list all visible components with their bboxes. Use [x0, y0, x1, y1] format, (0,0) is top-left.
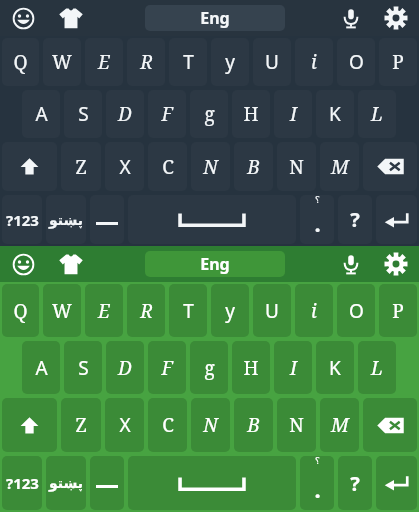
staticText: O — [349, 298, 364, 324]
button[interactable]: C — [148, 398, 187, 452]
button[interactable]: R — [127, 284, 165, 337]
button[interactable]: U — [253, 284, 291, 337]
button[interactable]: Shift — [2, 142, 57, 191]
button[interactable]: Emoji — [0, 246, 47, 282]
button[interactable]: Eng — [145, 5, 285, 31]
staticText: W — [52, 49, 72, 75]
button[interactable]: Backspace — [363, 142, 417, 191]
button[interactable]: g — [190, 90, 228, 138]
staticText: Q — [13, 298, 28, 324]
button[interactable]: O — [337, 38, 375, 86]
staticText: B — [247, 412, 260, 438]
button[interactable]: B — [234, 398, 273, 452]
button[interactable]: P — [379, 38, 417, 86]
button[interactable]: i — [295, 38, 333, 86]
button[interactable]: Underscore — [90, 195, 124, 244]
button[interactable]: ? — [338, 456, 372, 510]
button[interactable]: K — [316, 90, 354, 138]
staticText: Q — [13, 49, 28, 75]
button[interactable]: A — [22, 341, 60, 394]
button[interactable]: X — [105, 398, 144, 452]
button[interactable]: Space — [128, 456, 296, 510]
staticText: Eng — [200, 253, 230, 275]
staticText: ? — [350, 470, 360, 497]
staticText: X — [119, 412, 131, 438]
button[interactable]: A — [22, 90, 60, 138]
button[interactable]: T — [169, 38, 207, 86]
button[interactable]: L — [358, 341, 396, 394]
button[interactable]: W — [43, 38, 81, 86]
button[interactable]: M — [320, 142, 359, 191]
button[interactable]: ?123 — [2, 195, 42, 244]
button[interactable]: N — [191, 398, 230, 452]
staticText: Eng — [200, 7, 230, 29]
button[interactable]: Enter — [376, 456, 417, 510]
staticText: پښتو — [49, 475, 83, 491]
button[interactable]: Space — [128, 195, 296, 244]
button[interactable]: T — [169, 284, 207, 337]
button[interactable]: Shift — [2, 398, 57, 452]
button[interactable]: Themes — [47, 0, 95, 36]
button[interactable]: L — [358, 90, 396, 138]
button[interactable]: D — [106, 90, 144, 138]
button[interactable]: E — [85, 284, 123, 337]
button[interactable]: F — [148, 341, 186, 394]
button[interactable]: X — [105, 142, 144, 191]
button[interactable]: پښتو — [46, 195, 86, 244]
staticText: L — [371, 101, 383, 127]
button[interactable]: R — [127, 38, 165, 86]
button[interactable]: N — [277, 142, 316, 191]
button[interactable]: I — [274, 90, 312, 138]
button[interactable]: O — [337, 284, 375, 337]
button[interactable]: H — [232, 341, 270, 394]
staticText: X — [119, 154, 131, 180]
staticText: ? — [350, 206, 360, 233]
button[interactable]: N — [191, 142, 230, 191]
button[interactable]: B — [234, 142, 273, 191]
button[interactable]: Backspace — [363, 398, 417, 452]
button[interactable]: Settings — [373, 0, 419, 36]
button[interactable]: ?123 — [2, 456, 42, 510]
button[interactable]: y — [211, 38, 249, 86]
staticText: i — [311, 298, 317, 324]
button[interactable]: Period — [300, 195, 334, 244]
button[interactable]: Emoji — [0, 0, 47, 36]
button[interactable]: S — [64, 341, 102, 394]
button[interactable]: Settings — [373, 246, 419, 282]
button[interactable]: I — [274, 341, 312, 394]
button[interactable]: M — [320, 398, 359, 452]
button[interactable]: Q — [2, 38, 39, 86]
button[interactable]: Q — [2, 284, 39, 337]
button[interactable]: ? — [338, 195, 372, 244]
staticText: F — [161, 355, 173, 381]
button[interactable]: H — [232, 90, 270, 138]
button[interactable]: Voice input — [329, 0, 373, 36]
button[interactable]: Z — [61, 142, 101, 191]
button[interactable]: C — [148, 142, 187, 191]
button[interactable]: U — [253, 38, 291, 86]
button[interactable]: D — [106, 341, 144, 394]
button[interactable]: پښتو — [46, 456, 86, 510]
button[interactable]: P — [379, 284, 417, 337]
button[interactable]: Period — [300, 456, 334, 510]
button[interactable]: W — [43, 284, 81, 337]
button[interactable]: E — [85, 38, 123, 86]
button[interactable]: F — [148, 90, 186, 138]
button[interactable]: K — [316, 341, 354, 394]
staticText: U — [265, 49, 279, 75]
button[interactable]: Voice input — [329, 246, 373, 282]
staticText: I — [290, 101, 297, 127]
staticText: E — [98, 49, 110, 75]
staticText: ?123 — [6, 210, 39, 230]
staticText: M — [331, 412, 349, 438]
button[interactable]: Underscore — [90, 456, 124, 510]
button[interactable]: Enter — [376, 195, 417, 244]
button[interactable]: y — [211, 284, 249, 337]
button[interactable]: Z — [61, 398, 101, 452]
button[interactable]: Eng — [145, 251, 285, 277]
button[interactable]: g — [190, 341, 228, 394]
button[interactable]: i — [295, 284, 333, 337]
button[interactable]: Themes — [47, 246, 95, 282]
button[interactable]: N — [277, 398, 316, 452]
button[interactable]: S — [64, 90, 102, 138]
